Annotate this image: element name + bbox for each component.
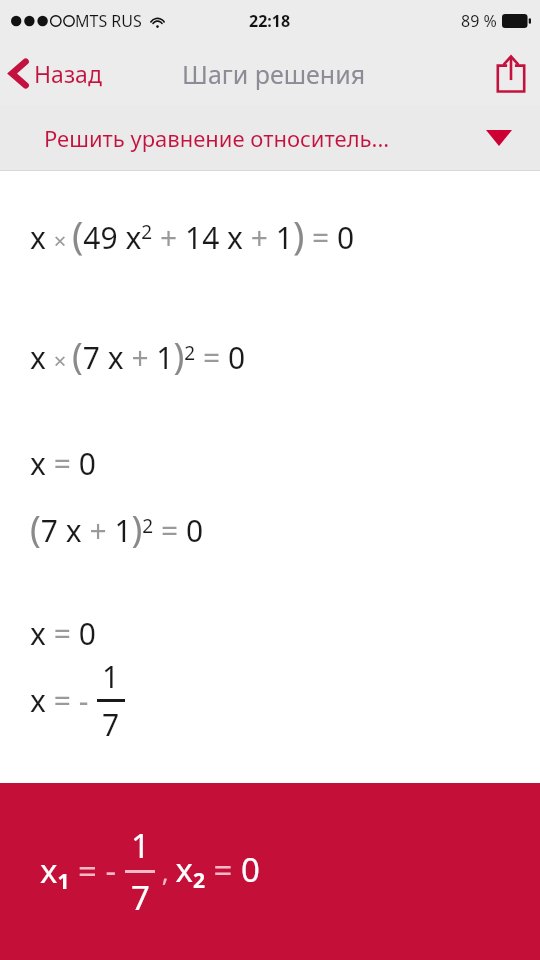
staticText: , x2 = 0 — [155, 847, 260, 894]
staticText: (7 x + 1)2 = 0 — [30, 504, 204, 553]
staticText: Шаги решения — [182, 57, 366, 91]
staticText: 7 — [102, 704, 120, 745]
staticText: x1 = - — [40, 848, 125, 895]
button[interactable]: x1 = - — [0, 783, 540, 960]
staticText: x × (49 x2 + 14 x + 1) = 0 — [30, 208, 355, 260]
staticText: Решить уравнение относитель... — [44, 123, 390, 153]
button[interactable]: Назад — [0, 52, 110, 95]
staticText: x = 0 — [30, 613, 96, 654]
staticText: x = - — [30, 680, 97, 721]
button[interactable]: Share — [482, 49, 540, 99]
staticText: 1 — [102, 656, 120, 697]
staticText: x = 0 — [30, 443, 96, 484]
staticText: 22:18 — [249, 10, 291, 32]
staticText: 89 % — [461, 10, 497, 32]
staticText: MTS RUS — [75, 10, 142, 32]
staticText: 1 — [131, 823, 150, 868]
staticText: 7 — [131, 875, 150, 920]
staticText: x × (7 x + 1)2 = 0 — [30, 331, 246, 380]
button[interactable]: Решить уравнение относитель... — [0, 105, 540, 171]
staticText: Назад — [34, 58, 102, 89]
